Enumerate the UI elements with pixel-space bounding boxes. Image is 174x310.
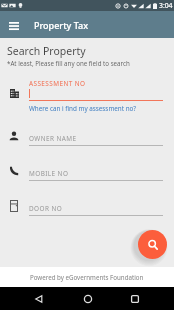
staticText: ASSESSMENT NO	[29, 79, 86, 88]
staticText: Where can i find my assessment no?	[29, 104, 137, 113]
staticText: OWNER NAME	[29, 134, 77, 143]
button[interactable]: DOOR NO	[0, 199, 174, 219]
staticText: DOOR NO	[29, 204, 63, 213]
staticText: Property Tax	[34, 19, 89, 31]
button[interactable]: Back	[29, 289, 48, 308]
button[interactable]: Search	[138, 230, 167, 259]
staticText: Search Property	[7, 44, 86, 58]
button[interactable]: OWNER NAME	[0, 129, 174, 149]
staticText: Powered by eGovernments Foundation	[30, 273, 144, 281]
staticText: *At least, Please fill any one field to …	[7, 59, 130, 67]
button[interactable]: Home	[78, 289, 97, 308]
button[interactable]: MOBILE NO	[0, 164, 174, 184]
button[interactable]: Where can i find my assessment no?	[29, 104, 137, 113]
staticText: 3:04	[159, 1, 173, 10]
button[interactable]: Recents	[125, 289, 144, 308]
button[interactable]: ASSESSMENT NO	[0, 74, 174, 104]
button[interactable]: Menu	[4, 15, 24, 37]
staticText: MOBILE NO	[29, 169, 69, 178]
